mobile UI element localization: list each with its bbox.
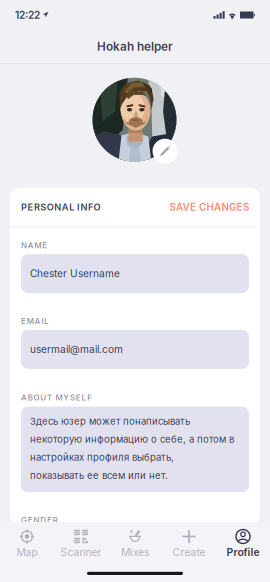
staticText: EMAIL: [21, 316, 49, 326]
button[interactable]: Chester Username: [21, 254, 249, 293]
staticText: Mixes: [121, 546, 149, 559]
staticText: Здесь юзер может понаписывать некоторую …: [30, 415, 234, 481]
staticText: NAME: [21, 240, 47, 250]
staticText: Create: [172, 546, 205, 559]
staticText: Map: [16, 546, 37, 559]
staticText: Scanner: [60, 546, 101, 559]
button[interactable]: Create: [162, 522, 216, 562]
staticText: 12:22: [15, 9, 40, 21]
staticText: SAVE CHANGES: [169, 201, 249, 213]
staticText: PERSONAL INFO: [21, 202, 100, 213]
staticText: Hokah helper: [97, 39, 173, 54]
staticText: Chester Username: [30, 267, 120, 280]
staticText: ABOUT MYSELF: [21, 393, 92, 403]
button[interactable]: Mixes: [108, 522, 162, 562]
staticText: Profile: [226, 546, 259, 559]
button[interactable]: Profile: [216, 522, 270, 562]
button[interactable]: Scanner: [54, 522, 108, 562]
button[interactable]: usermail@mail.com: [21, 330, 249, 369]
staticText: GENDER: [21, 515, 58, 525]
button[interactable]: Map: [0, 522, 54, 562]
button[interactable]: SAVE CHANGES: [169, 201, 249, 213]
button[interactable]: Change photo: [152, 139, 177, 164]
staticText: usermail@mail.com: [30, 343, 123, 355]
